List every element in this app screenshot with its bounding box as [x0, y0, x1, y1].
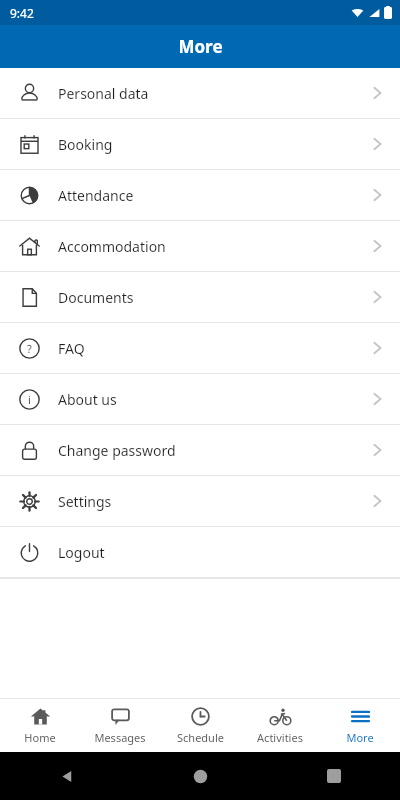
staticText: Change password: [58, 441, 366, 460]
staticText: Settings: [58, 492, 366, 511]
staticText: More: [178, 35, 223, 58]
button[interactable]: Settings: [0, 476, 400, 527]
staticText: FAQ: [58, 339, 366, 358]
staticText: i: [28, 392, 31, 407]
staticText: Accommodation: [58, 237, 366, 256]
button[interactable]: Documents: [0, 272, 400, 323]
staticText: ?: [27, 341, 32, 356]
button[interactable]: Attendance: [0, 170, 400, 221]
button[interactable]: More: [320, 699, 400, 752]
staticText: Messages: [94, 730, 146, 745]
staticText: Logout: [58, 543, 366, 562]
staticText: More: [346, 730, 374, 745]
staticText: Schedule: [177, 730, 224, 745]
button[interactable]: ?: [0, 323, 400, 374]
staticText: 9:42: [10, 5, 34, 21]
button[interactable]: Change password: [0, 425, 400, 476]
button[interactable]: Accommodation: [0, 221, 400, 272]
button[interactable]: Schedule: [160, 699, 240, 752]
staticText: Booking: [58, 135, 366, 154]
staticText: Attendance: [58, 186, 366, 205]
staticText: Home: [24, 730, 56, 745]
button[interactable]: Activities: [240, 699, 320, 752]
staticText: Activities: [257, 730, 303, 745]
button[interactable]: Logout: [0, 527, 400, 578]
staticText: Documents: [58, 288, 366, 307]
button[interactable]: Booking: [0, 119, 400, 170]
staticText: About us: [58, 390, 366, 409]
button[interactable]: Messages: [80, 699, 160, 752]
staticText: Personal data: [58, 84, 366, 103]
button[interactable]: Home: [0, 699, 80, 752]
button[interactable]: i: [0, 374, 400, 425]
button[interactable]: Personal data: [0, 68, 400, 119]
